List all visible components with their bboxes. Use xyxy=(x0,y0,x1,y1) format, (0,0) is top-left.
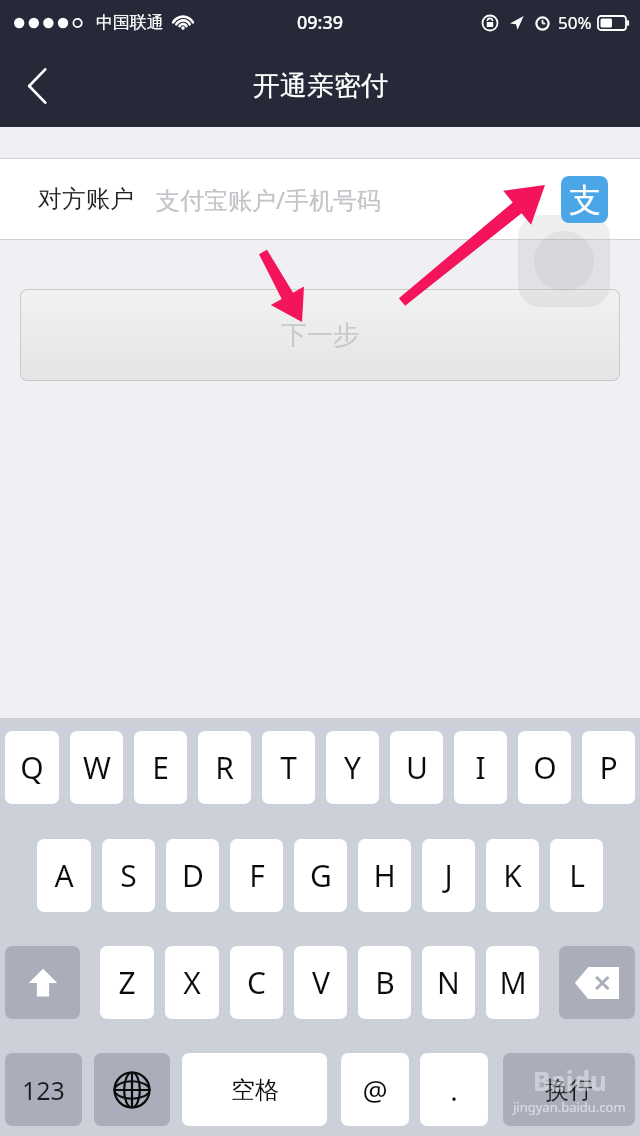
staticText: J xyxy=(444,855,453,896)
button[interactable]: Numbers xyxy=(5,1053,82,1126)
staticText: R xyxy=(215,747,234,788)
button[interactable]: E xyxy=(134,731,187,804)
staticText: Q xyxy=(20,747,44,788)
button[interactable]: I xyxy=(454,731,507,804)
button[interactable]: M xyxy=(486,946,539,1019)
staticText: O xyxy=(533,747,557,788)
button[interactable]: W xyxy=(70,731,123,804)
staticText: K xyxy=(503,855,522,896)
staticText: 支付宝账户/手机号码 xyxy=(156,183,381,216)
staticText: . xyxy=(450,1071,458,1109)
button[interactable]: AssistiveTouch xyxy=(518,215,610,307)
button[interactable]: . xyxy=(420,1053,488,1126)
button[interactable]: @ xyxy=(341,1053,409,1126)
button[interactable]: 下一步 xyxy=(20,289,620,381)
staticText: G xyxy=(310,855,332,896)
staticText: V xyxy=(312,962,330,1003)
button[interactable]: T xyxy=(262,731,315,804)
staticText: 对方账户 xyxy=(38,184,134,214)
staticText: jingyan.baidu.com xyxy=(513,1098,626,1116)
button[interactable]: A xyxy=(37,839,91,912)
button[interactable]: Alipay xyxy=(561,176,608,223)
button[interactable]: Q xyxy=(5,731,59,804)
staticText: F xyxy=(249,855,265,896)
button[interactable]: J xyxy=(422,839,475,912)
button[interactable]: U xyxy=(390,731,443,804)
staticText: 下一步 xyxy=(281,319,359,352)
staticText: U xyxy=(406,747,428,788)
button[interactable]: 换行 xyxy=(503,1053,635,1126)
button[interactable]: L xyxy=(550,839,603,912)
button[interactable]: Back xyxy=(8,56,68,116)
button[interactable]: S xyxy=(102,839,155,912)
staticText: 空格 xyxy=(231,1075,279,1105)
button[interactable]: R xyxy=(198,731,251,804)
staticText: Z xyxy=(118,962,136,1003)
staticText: 支 xyxy=(569,180,601,220)
staticText: W xyxy=(83,747,111,788)
staticText: Y xyxy=(344,747,361,788)
staticText: M xyxy=(499,962,527,1003)
button[interactable]: V xyxy=(294,946,347,1019)
staticText: 123 xyxy=(22,1073,65,1107)
staticText: H xyxy=(373,855,396,896)
button[interactable]: B xyxy=(358,946,411,1019)
staticText: I xyxy=(475,747,486,788)
button[interactable]: Z xyxy=(100,946,154,1019)
staticText: L xyxy=(569,855,585,896)
staticText: 50% xyxy=(558,11,592,34)
staticText: 换行 xyxy=(545,1075,593,1105)
button[interactable]: P xyxy=(582,731,635,804)
staticText: 09:39 xyxy=(297,10,344,35)
button[interactable]: Shift xyxy=(5,946,80,1019)
button[interactable]: Delete xyxy=(559,946,635,1019)
staticText: D xyxy=(182,855,204,896)
button[interactable]: K xyxy=(486,839,539,912)
staticText: N xyxy=(437,962,460,1003)
button[interactable]: D xyxy=(166,839,219,912)
button[interactable]: Switch keyboard xyxy=(94,1053,170,1126)
staticText: A xyxy=(54,855,74,896)
button[interactable]: 对方账户 xyxy=(0,159,640,239)
staticText: P xyxy=(599,747,618,788)
staticText: 中国联通 xyxy=(96,12,164,33)
staticText: X xyxy=(183,962,201,1003)
staticText: Baidu xyxy=(533,1063,607,1098)
button[interactable]: O xyxy=(518,731,571,804)
button[interactable]: G xyxy=(294,839,347,912)
button[interactable]: 空格 xyxy=(182,1053,327,1126)
staticText: T xyxy=(280,747,297,788)
staticText: S xyxy=(120,855,137,896)
button[interactable]: C xyxy=(230,946,283,1019)
button[interactable]: H xyxy=(358,839,411,912)
button[interactable]: Y xyxy=(326,731,379,804)
staticText: C xyxy=(247,962,266,1003)
staticText: 开通亲密付 xyxy=(253,69,388,103)
staticText: @ xyxy=(362,1071,388,1109)
button[interactable]: N xyxy=(422,946,475,1019)
staticText: B xyxy=(375,962,395,1003)
button[interactable]: X xyxy=(165,946,219,1019)
staticText: E xyxy=(152,747,169,788)
button[interactable]: F xyxy=(230,839,283,912)
